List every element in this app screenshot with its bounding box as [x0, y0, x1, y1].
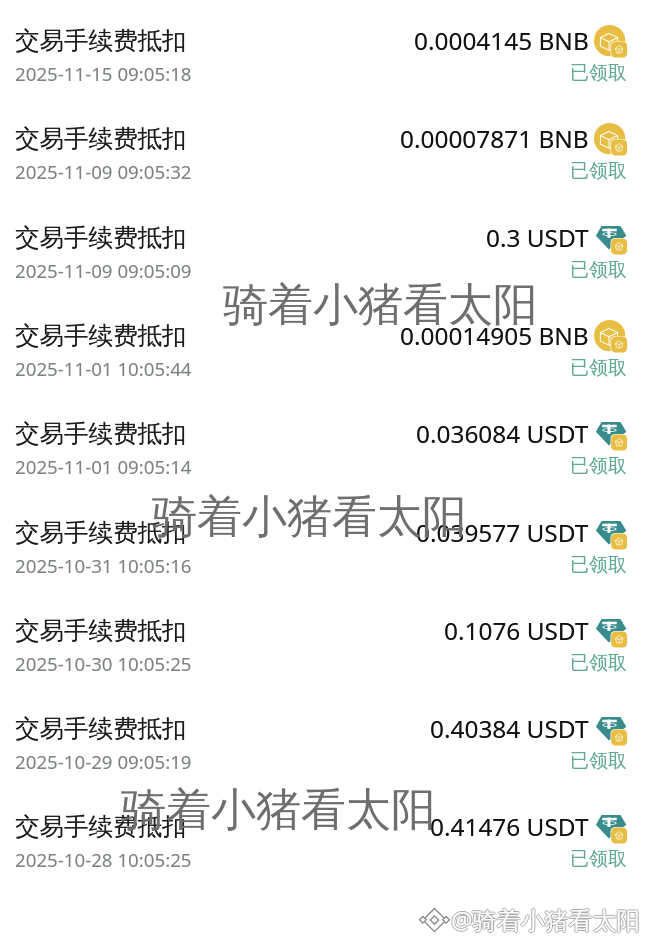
staticText: 交易手续费抵扣 [15, 25, 187, 56]
button[interactable]: 交易手续费抵扣 [0, 786, 652, 884]
staticText: 2025-11-09 09:05:32 [15, 159, 192, 184]
staticText: 0.3 USDT [486, 221, 589, 254]
staticText: 交易手续费抵扣 [15, 713, 187, 744]
staticText: 2025-10-30 10:05:25 [15, 651, 192, 676]
staticText: 交易手续费抵扣 [15, 222, 187, 253]
staticText: 交易手续费抵扣 [15, 615, 187, 646]
staticText: 已领取 [570, 61, 627, 85]
staticText: 0.1076 USDT [444, 614, 589, 647]
staticText: 已领取 [570, 356, 627, 380]
staticText: 交易手续费抵扣 [15, 25, 187, 56]
staticText: 交易手续费抵扣 [15, 517, 187, 548]
staticText: 骑着小猪看太阳 [223, 277, 538, 334]
staticText: 0.41476 USDT [430, 810, 589, 843]
staticText: 0.0004145 BNB [414, 24, 589, 57]
button[interactable]: 交易手续费抵扣 [0, 197, 652, 295]
staticText: 交易手续费抵扣 [15, 811, 187, 842]
staticText: 交易手续费抵扣 [15, 713, 187, 744]
staticText: 骑着小猪看太阳 [152, 489, 467, 546]
staticText: 2025-11-09 09:05:09 [15, 258, 192, 283]
staticText: @骑着小猪看太阳 [451, 904, 641, 937]
staticText: 0.00007871 BNB [400, 122, 589, 155]
staticText: 已领取 [570, 454, 627, 478]
staticText: 0.41476 USDT [430, 810, 589, 843]
staticText: 0.00007871 BNB [400, 122, 589, 155]
staticText: 交易手续费抵扣 [15, 222, 187, 253]
staticText: @骑着小猪看太阳 [451, 902, 641, 935]
staticText: 0.3 USDT [486, 221, 589, 254]
button[interactable]: 交易手续费抵扣 [0, 295, 652, 393]
staticText: 已领取 [570, 651, 627, 675]
staticText: 2025-11-01 10:05:44 [15, 356, 192, 381]
button[interactable]: 交易手续费抵扣 [0, 492, 652, 590]
staticText: 0.00014905 BNB [400, 319, 589, 352]
staticText: 已领取 [570, 553, 627, 577]
staticText: 0.1076 USDT [444, 614, 589, 647]
staticText: 骑着小猪看太阳 [121, 782, 436, 839]
staticText: 交易手续费抵扣 [15, 123, 187, 154]
staticText: 2025-11-15 09:05:18 [15, 61, 192, 86]
button[interactable]: 交易手续费抵扣 [0, 98, 652, 196]
staticText: 0.036084 USDT [416, 417, 589, 450]
button[interactable]: 交易手续费抵扣 [0, 590, 652, 688]
staticText: 0.0004145 BNB [414, 24, 589, 57]
staticText: 0.40384 USDT [430, 712, 589, 745]
staticText: 2025-10-29 09:05:19 [15, 749, 192, 774]
staticText: 交易手续费抵扣 [15, 418, 187, 449]
staticText: 2025-10-31 10:05:16 [15, 553, 192, 578]
staticText: 交易手续费抵扣 [15, 418, 187, 449]
staticText: 0.039577 USDT [416, 516, 589, 549]
button[interactable]: 交易手续费抵扣 [0, 688, 652, 786]
staticText: 0.40384 USDT [430, 712, 589, 745]
staticText: 已领取 [570, 159, 627, 183]
staticText: 交易手续费抵扣 [15, 320, 187, 351]
staticText: 2025-11-01 09:05:14 [15, 454, 192, 479]
staticText: 交易手续费抵扣 [15, 123, 187, 154]
button[interactable]: Author watermark [420, 903, 641, 936]
staticText: 已领取 [570, 749, 627, 773]
staticText: @骑着小猪看太阳 [451, 903, 641, 936]
staticText: 0.039577 USDT [416, 516, 589, 549]
button[interactable]: 交易手续费抵扣 [0, 0, 652, 98]
staticText: 交易手续费抵扣 [15, 615, 187, 646]
staticText: 0.00014905 BNB [400, 319, 589, 352]
staticText: 2025-10-28 10:05:25 [15, 847, 192, 872]
staticText: 交易手续费抵扣 [15, 517, 187, 548]
staticText: 0.036084 USDT [416, 417, 589, 450]
staticText: 交易手续费抵扣 [15, 811, 187, 842]
staticText: @骑着小猪看太阳 [450, 903, 640, 936]
staticText: 已领取 [570, 847, 627, 871]
staticText: 交易手续费抵扣 [15, 320, 187, 351]
staticText: @骑着小猪看太阳 [452, 903, 642, 936]
button[interactable]: 交易手续费抵扣 [0, 393, 652, 491]
staticText: 已领取 [570, 258, 627, 282]
